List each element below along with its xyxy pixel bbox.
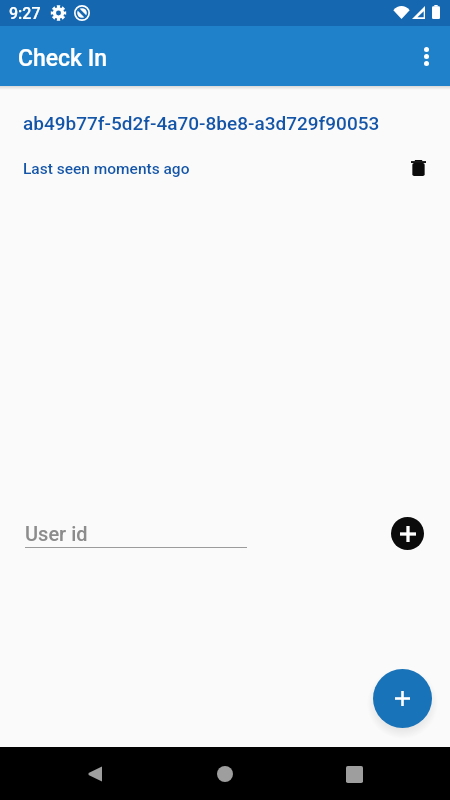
button[interactable]: Delete bbox=[398, 148, 438, 188]
button[interactable]: Recents bbox=[330, 750, 378, 798]
button[interactable]: Home bbox=[201, 750, 249, 798]
button[interactable]: Back bbox=[70, 750, 118, 798]
staticText: ab49b77f-5d2f-4a70-8be8-a3d729f90053 bbox=[23, 112, 380, 134]
button[interactable]: Add user bbox=[391, 517, 424, 550]
button[interactable]: Add bbox=[373, 669, 432, 728]
staticText: Check In bbox=[18, 45, 108, 72]
staticText: 9:27 bbox=[9, 4, 41, 23]
button[interactable]: More options bbox=[404, 34, 448, 78]
staticText: Last seen moments ago bbox=[23, 160, 190, 178]
staticText: User id bbox=[25, 522, 88, 545]
